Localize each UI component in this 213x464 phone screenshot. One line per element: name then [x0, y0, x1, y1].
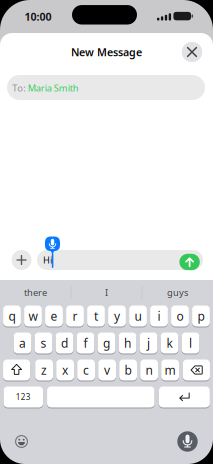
- button[interactable]: q: [3, 305, 21, 326]
- staticText: u: [134, 308, 141, 324]
- button[interactable]: Dictation: [45, 236, 60, 254]
- button[interactable]: guys: [144, 282, 210, 302]
- button[interactable]: Return: [159, 386, 210, 407]
- button[interactable]: o: [171, 305, 189, 326]
- button[interactable]: To: Maria Smith: [7, 75, 205, 100]
- staticText: a: [19, 335, 26, 351]
- button[interactable]: Message field: [37, 250, 203, 270]
- button[interactable]: r: [66, 305, 84, 326]
- button[interactable]: g: [98, 332, 115, 353]
- staticText: q: [8, 308, 15, 324]
- staticText: s: [40, 335, 46, 351]
- button[interactable]: a: [14, 332, 31, 353]
- button[interactable]: t: [87, 305, 105, 326]
- staticText: c: [83, 362, 89, 378]
- staticText: there: [24, 286, 47, 299]
- staticText: z: [41, 362, 47, 378]
- staticText: Hi: [43, 254, 52, 266]
- button[interactable]: Close: [182, 42, 202, 62]
- staticText: i: [157, 308, 160, 324]
- button[interactable]: s: [35, 332, 52, 353]
- button[interactable]: Dictate: [177, 431, 198, 452]
- button[interactable]: y: [108, 305, 126, 326]
- staticText: Maria Smith: [28, 82, 79, 94]
- button[interactable]: b: [119, 359, 137, 380]
- button[interactable]: p: [192, 305, 210, 326]
- staticText: e: [50, 308, 57, 324]
- button[interactable]: there: [2, 282, 68, 302]
- staticText: p: [197, 308, 204, 324]
- staticText: 123: [16, 392, 31, 402]
- button[interactable]: Send: [179, 254, 200, 270]
- staticText: v: [104, 362, 110, 378]
- button[interactable]: m: [161, 359, 179, 380]
- button[interactable]: i: [150, 305, 168, 326]
- staticText: r: [72, 308, 77, 324]
- button[interactable]: e: [45, 305, 63, 326]
- staticText: b: [125, 362, 132, 378]
- staticText: n: [146, 362, 153, 378]
- button[interactable]: x: [56, 359, 74, 380]
- staticText: New Message: [71, 45, 142, 59]
- button[interactable]: Apps: [11, 250, 31, 270]
- staticText: To:: [12, 82, 26, 94]
- button[interactable]: h: [119, 332, 136, 353]
- staticText: k: [166, 335, 172, 351]
- staticText: d: [61, 335, 68, 351]
- staticText: x: [62, 362, 68, 378]
- button[interactable]: w: [24, 305, 42, 326]
- button[interactable]: n: [140, 359, 158, 380]
- staticText: o: [176, 308, 183, 324]
- button[interactable]: k: [161, 332, 178, 353]
- staticText: y: [114, 308, 120, 324]
- staticText: I: [105, 286, 108, 299]
- button[interactable]: 123: [4, 386, 43, 407]
- button[interactable]: Delete: [183, 359, 210, 380]
- staticText: guys: [167, 286, 188, 299]
- button[interactable]: z: [35, 359, 53, 380]
- button[interactable]: I: [73, 282, 139, 302]
- button[interactable]: l: [182, 332, 199, 353]
- button[interactable]: u: [129, 305, 147, 326]
- button[interactable]: c: [77, 359, 95, 380]
- staticText: j: [147, 335, 150, 351]
- staticText: h: [124, 335, 131, 351]
- button[interactable]: Emoji: [15, 435, 28, 448]
- staticText: w: [28, 308, 37, 324]
- staticText: m: [165, 362, 176, 378]
- button[interactable]: d: [56, 332, 73, 353]
- staticText: l: [189, 335, 192, 351]
- staticText: t: [94, 308, 98, 324]
- staticText: g: [103, 335, 110, 351]
- staticText: 10:00: [24, 9, 51, 24]
- button[interactable]: Shift: [3, 359, 30, 380]
- button[interactable]: j: [140, 332, 157, 353]
- button[interactable]: v: [98, 359, 116, 380]
- button[interactable]: Space: [47, 386, 154, 407]
- staticText: f: [83, 335, 87, 351]
- button[interactable]: f: [77, 332, 94, 353]
